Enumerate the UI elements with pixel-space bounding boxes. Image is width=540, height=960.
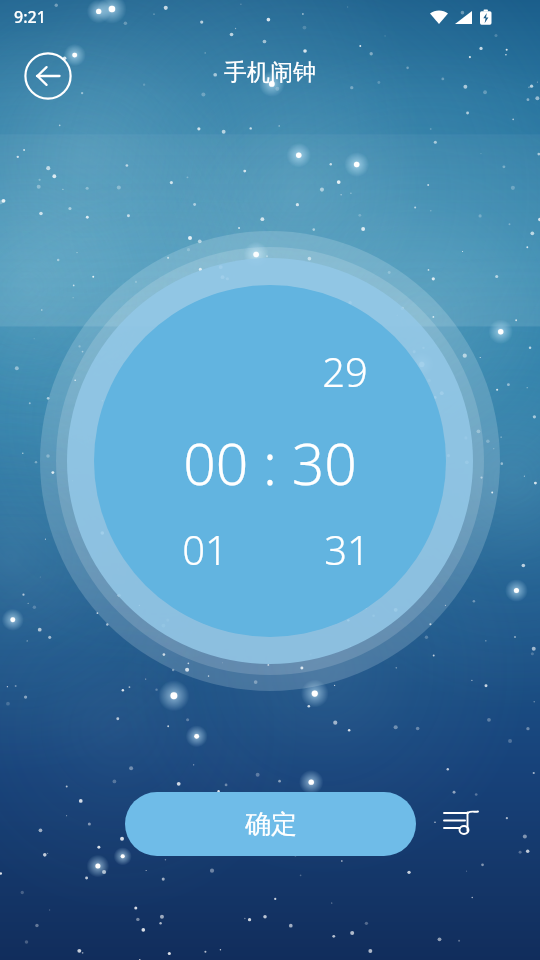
staticText: 31 (324, 522, 370, 576)
button[interactable]: Back (24, 52, 72, 100)
button[interactable]: 31 (302, 522, 392, 576)
button[interactable]: 29 (300, 344, 390, 398)
staticText: 确定 (245, 808, 297, 841)
staticText: 00 : 30 (183, 424, 357, 502)
button[interactable]: 01 (160, 522, 250, 576)
button[interactable]: 确定 (125, 792, 416, 856)
staticText: 01 (182, 522, 228, 576)
staticText: 手机闹钟 (224, 58, 316, 87)
staticText: 9:21 (14, 6, 46, 28)
button[interactable]: 00 : 30 (120, 424, 420, 502)
button[interactable]: Ringtone (434, 796, 490, 852)
staticText: 29 (322, 344, 368, 398)
